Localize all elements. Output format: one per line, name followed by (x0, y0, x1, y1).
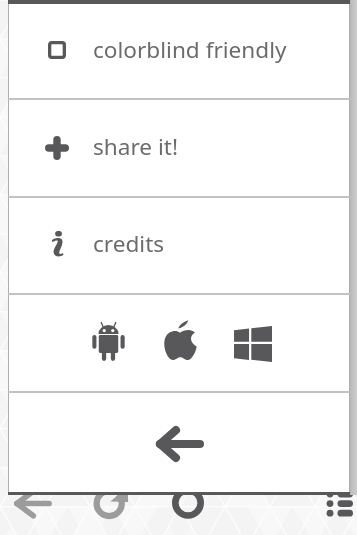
button[interactable]: colorblind friendly (8, 4, 350, 98)
button[interactable]: Refresh (90, 483, 132, 525)
button[interactable]: Menu (320, 483, 357, 525)
button[interactable]: Back (8, 393, 350, 490)
staticText: colorblind friendly (93, 34, 287, 65)
staticText: credits (93, 228, 165, 259)
staticText: share it! (93, 131, 179, 162)
button[interactable]: Apple (146, 305, 214, 375)
button[interactable]: Back (9, 483, 57, 524)
button[interactable]: Windows (219, 309, 287, 379)
button[interactable]: credits (8, 198, 350, 293)
button[interactable]: share it! (8, 100, 350, 196)
button[interactable]: Home (168, 483, 210, 525)
button[interactable]: Android (74, 306, 142, 376)
